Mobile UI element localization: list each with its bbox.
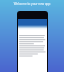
staticText: Welcome to your new app (0, 2, 64, 6)
button[interactable] (18, 11, 47, 72)
